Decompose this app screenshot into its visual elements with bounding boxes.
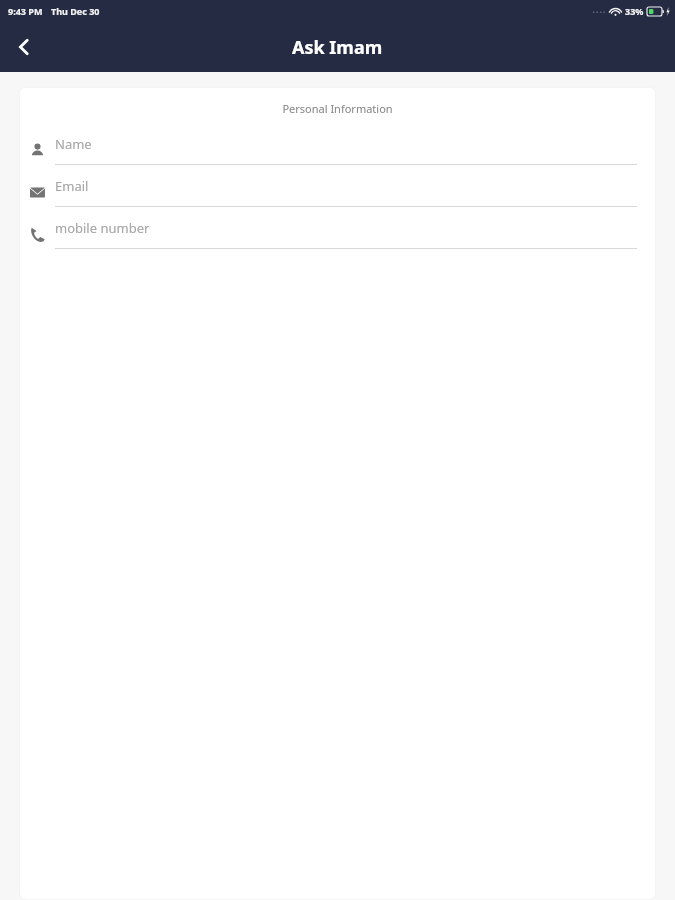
staticText: Personal Information	[19, 101, 656, 116]
staticText: mobile number	[55, 219, 637, 237]
staticText: Thu Dec 30	[51, 5, 100, 17]
button[interactable]: Back	[4, 27, 44, 67]
staticText: 9:43 PM	[8, 5, 43, 17]
staticText: Ask Imam	[292, 35, 383, 60]
staticText: 33%	[625, 5, 644, 17]
button[interactable]: Email	[19, 171, 656, 213]
button[interactable]: mobile number	[19, 213, 656, 255]
button[interactable]: Name	[19, 129, 656, 171]
staticText: Name	[55, 135, 637, 153]
staticText: Email	[55, 177, 637, 195]
